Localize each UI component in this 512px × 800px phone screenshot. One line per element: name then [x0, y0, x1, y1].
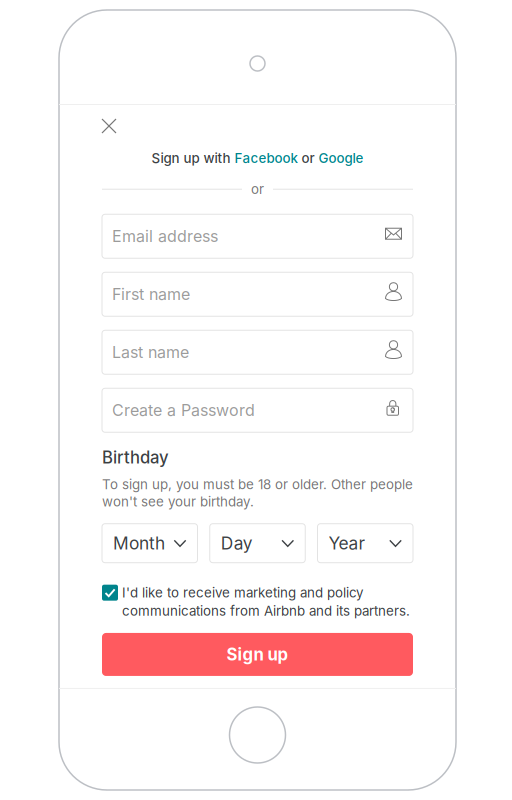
button[interactable]: Day — [210, 524, 305, 563]
staticText: Create a Password — [112, 401, 255, 420]
button[interactable]: Month — [102, 524, 197, 563]
button[interactable]: Sign up — [102, 633, 413, 676]
button[interactable]: Create a Password — [102, 388, 413, 432]
staticText: I'd like to receive marketing and policy — [122, 585, 363, 601]
staticText: communications from Airbnb and its partn… — [122, 603, 410, 619]
staticText: First name — [112, 285, 190, 304]
staticText: Last name — [112, 343, 189, 362]
staticText: Birthday — [102, 447, 169, 467]
staticText: Sign up with — [151, 150, 234, 166]
staticText: or — [251, 181, 264, 197]
staticText: Year — [328, 533, 365, 554]
staticText: To sign up, you must be 18 or older. Oth… — [102, 476, 413, 492]
staticText: Month — [113, 533, 165, 554]
staticText: Day — [221, 533, 253, 554]
staticText: or — [297, 150, 318, 166]
button[interactable]: Email address — [102, 214, 413, 258]
button[interactable]: Google — [318, 150, 363, 166]
staticText: Facebook — [234, 150, 297, 166]
staticText: Google — [318, 150, 363, 166]
button[interactable]: Last name — [102, 330, 413, 374]
button[interactable]: Close — [102, 111, 132, 141]
staticText: Email address — [112, 227, 218, 246]
button[interactable]: Year — [317, 524, 413, 563]
staticText: Sign up — [226, 644, 288, 665]
staticText: won't see your birthday. — [102, 494, 254, 510]
button[interactable]: Receive marketing communications — [102, 585, 118, 601]
button[interactable]: Facebook — [234, 150, 297, 166]
button[interactable]: First name — [102, 272, 413, 316]
